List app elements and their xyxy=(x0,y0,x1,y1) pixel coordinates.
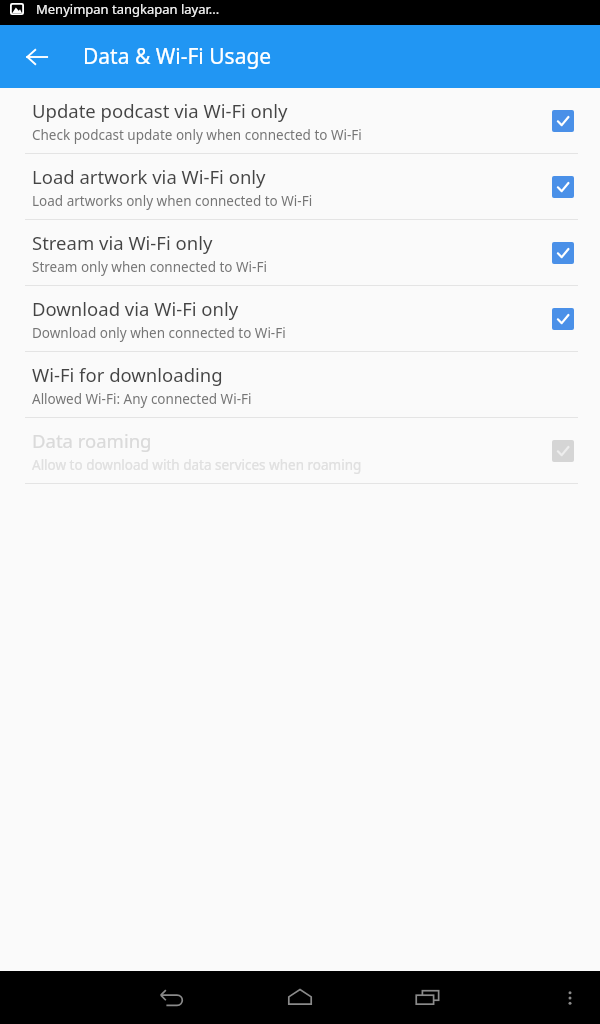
button[interactable]: Back xyxy=(144,971,200,1024)
staticText: Update podcast via Wi-Fi only xyxy=(32,98,288,123)
button[interactable]: Toggle xyxy=(552,110,574,132)
button[interactable]: Back xyxy=(14,34,60,80)
staticText: Wi-Fi for downloading xyxy=(32,362,223,387)
button[interactable]: Data roaming xyxy=(0,418,600,483)
staticText: Download only when connected to Wi-Fi xyxy=(32,324,286,342)
staticText: Menyimpan tangkapan layar... xyxy=(36,0,220,18)
button[interactable]: Toggle xyxy=(552,242,574,264)
staticText: Stream only when connected to Wi-Fi xyxy=(32,258,267,276)
button[interactable]: Toggle xyxy=(552,176,574,198)
button[interactable]: Recent apps xyxy=(400,971,456,1024)
staticText: Data roaming xyxy=(32,428,152,453)
staticText: Check podcast update only when connected… xyxy=(32,126,362,144)
button[interactable]: Update podcast via Wi-Fi only xyxy=(0,88,600,153)
staticText: Load artworks only when connected to Wi-… xyxy=(32,192,313,210)
button[interactable]: Toggle xyxy=(552,308,574,330)
staticText: Allowed Wi-Fi: Any connected Wi-Fi xyxy=(32,390,252,408)
button[interactable]: Home xyxy=(272,971,328,1024)
staticText: Load artwork via Wi-Fi only xyxy=(32,164,266,189)
button[interactable]: Download via Wi-Fi only xyxy=(0,286,600,351)
staticText: Stream via Wi-Fi only xyxy=(32,230,213,255)
staticText: Data & Wi-Fi Usage xyxy=(83,42,272,71)
staticText: Allow to download with data services whe… xyxy=(32,456,362,474)
button[interactable]: Wi-Fi for downloading xyxy=(0,352,600,417)
button[interactable]: Load artwork via Wi-Fi only xyxy=(0,154,600,219)
button[interactable]: More options xyxy=(546,974,594,1022)
button[interactable]: Stream via Wi-Fi only xyxy=(0,220,600,285)
staticText: Download via Wi-Fi only xyxy=(32,296,239,321)
button[interactable]: Toggle xyxy=(552,440,574,462)
